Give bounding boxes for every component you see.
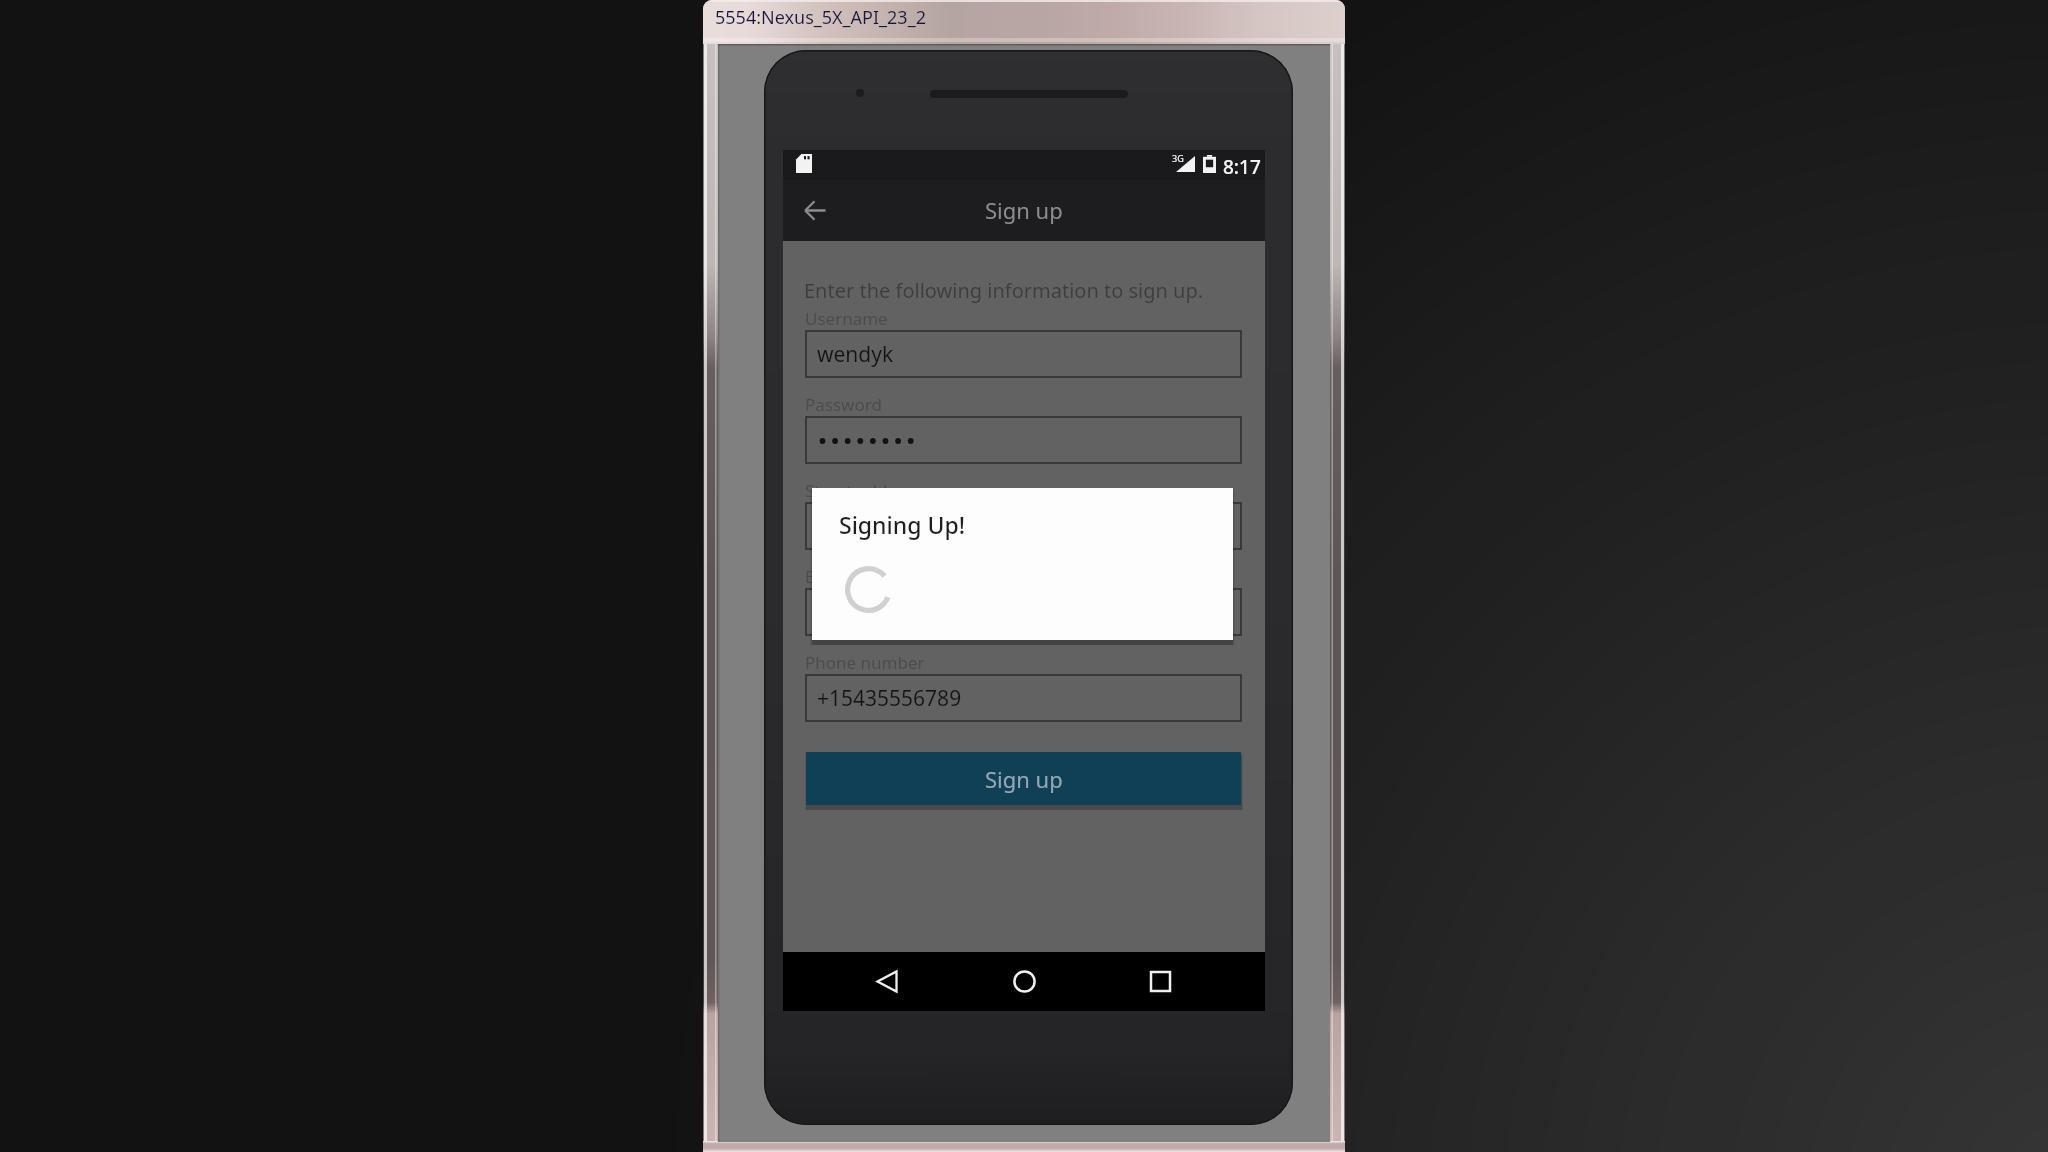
button[interactable]: +15435556789 [806, 675, 1241, 721]
staticText: Street address [805, 479, 920, 502]
staticText: wendyk [817, 340, 894, 369]
button[interactable]: Recent apps [1131, 952, 1189, 1011]
button[interactable]: Sign up [806, 752, 1241, 805]
staticText: 8:17 [1223, 154, 1261, 180]
button[interactable]: Signing Up! [812, 488, 1233, 640]
button[interactable]: Back [858, 952, 916, 1011]
button[interactable]: Home [995, 952, 1053, 1011]
staticText: Password [805, 393, 882, 416]
staticText: Sign up [985, 764, 1063, 794]
button[interactable]: Navigate up [783, 180, 841, 241]
staticText: Phone number [805, 651, 925, 674]
staticText: Username [805, 307, 888, 330]
staticText: 3G [1172, 152, 1184, 164]
button[interactable]: wendyk [806, 331, 1241, 377]
button[interactable] [806, 417, 1241, 463]
staticText: Sign up [985, 195, 1063, 225]
button[interactable] [806, 589, 1241, 635]
staticText: Signing Up! [839, 509, 965, 540]
staticText: Enter the following information to sign … [804, 277, 1204, 304]
staticText: Email [805, 565, 849, 588]
staticText: +15435556789 [817, 684, 962, 713]
button[interactable] [806, 503, 1241, 549]
staticText: 5554:Nexus_5X_API_23_2 [715, 5, 926, 30]
